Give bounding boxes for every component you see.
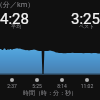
staticText: 平均: [11, 23, 21, 29]
staticText: ベスト: [79, 23, 95, 29]
staticText: 8:14: [50, 83, 74, 89]
staticText: 3:25: [71, 10, 100, 28]
staticText: 5:25: [25, 83, 49, 89]
staticText: 2:37: [0, 83, 24, 89]
staticText: （分／km）: [0, 0, 35, 10]
staticText: 時間（時：分：秒）: [0, 89, 100, 97]
staticText: 4:28: [0, 10, 29, 28]
staticText: 11:02: [75, 83, 99, 89]
